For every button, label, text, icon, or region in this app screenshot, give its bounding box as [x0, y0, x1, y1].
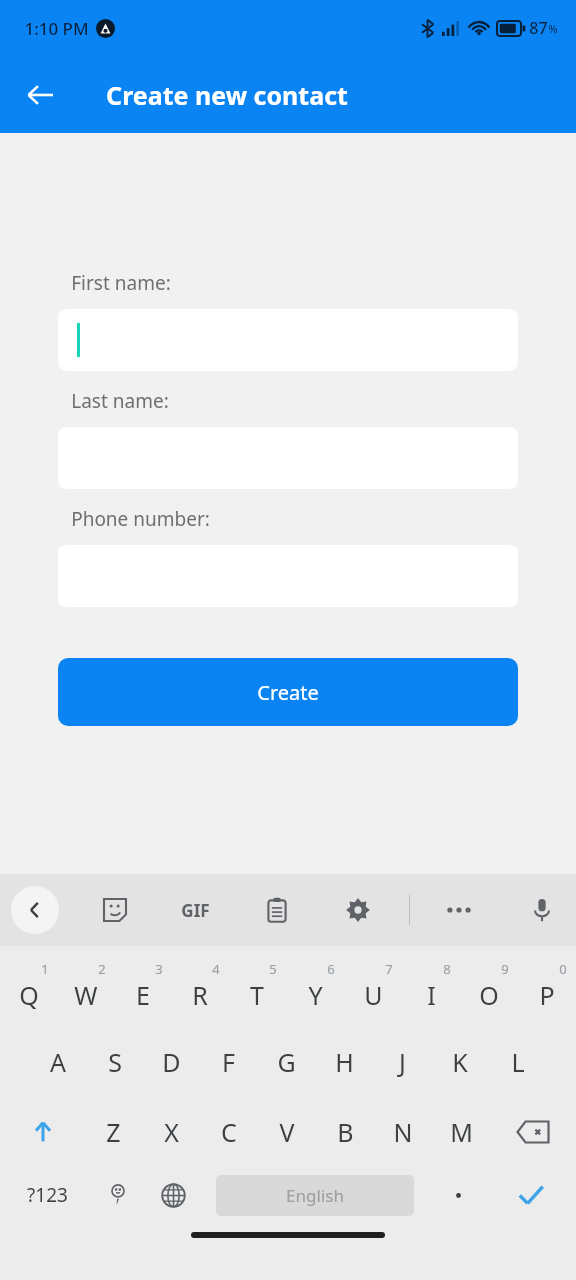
button[interactable]: Emoji: [94, 1171, 142, 1219]
staticText: V: [279, 1115, 295, 1149]
button[interactable]: D: [143, 1033, 200, 1091]
staticText: T: [250, 978, 264, 1012]
staticText: 7: [385, 960, 393, 978]
button[interactable]: Create: [58, 658, 518, 726]
staticText: 1: [41, 960, 49, 978]
staticText: S: [108, 1045, 122, 1079]
button[interactable]: M: [432, 1103, 490, 1161]
staticText: J: [399, 1045, 406, 1079]
staticText: Y: [308, 978, 323, 1012]
staticText: O: [479, 978, 499, 1012]
button[interactable]: English: [216, 1175, 414, 1216]
button[interactable]: K: [431, 1033, 489, 1091]
staticText: 9: [501, 960, 509, 978]
button[interactable]: T: [228, 959, 286, 1021]
staticText: X: [164, 1115, 179, 1149]
staticText: 87: [529, 17, 548, 39]
button[interactable]: W: [57, 959, 114, 1021]
button[interactable]: I: [402, 959, 460, 1021]
button[interactable]: [58, 309, 518, 371]
button[interactable]: Y: [286, 959, 344, 1021]
button[interactable]: Stickers: [92, 887, 138, 933]
staticText: English: [286, 1184, 344, 1207]
button[interactable]: A: [29, 1033, 86, 1091]
staticText: 1:10 PM: [24, 17, 89, 40]
button[interactable]: Change language: [149, 1171, 197, 1219]
button[interactable]: L: [489, 1033, 547, 1091]
staticText: Z: [106, 1115, 121, 1149]
staticText: F: [222, 1045, 235, 1079]
button[interactable]: ?123: [16, 1171, 78, 1219]
button[interactable]: V: [258, 1103, 316, 1161]
button[interactable]: Clipboard: [254, 887, 300, 933]
staticText: C: [221, 1115, 237, 1149]
staticText: 5: [269, 960, 277, 978]
button[interactable]: X: [142, 1103, 200, 1161]
button[interactable]: H: [315, 1033, 373, 1091]
staticText: U: [364, 978, 383, 1012]
staticText: ?123: [27, 1182, 68, 1208]
button[interactable]: S: [86, 1033, 143, 1091]
staticText: K: [452, 1045, 468, 1079]
staticText: G: [277, 1045, 296, 1079]
staticText: Last name:: [71, 388, 169, 414]
staticText: First name:: [71, 270, 171, 296]
staticText: B: [337, 1115, 354, 1149]
button[interactable]: P: [518, 959, 576, 1021]
staticText: Create new contact: [106, 78, 348, 112]
button[interactable]: Z: [85, 1103, 142, 1161]
staticText: 0: [559, 960, 567, 978]
button[interactable]: Period: [434, 1171, 482, 1219]
staticText: L: [511, 1045, 525, 1079]
button[interactable]: More options: [436, 887, 482, 933]
button[interactable]: E: [114, 959, 171, 1021]
staticText: Phone number:: [71, 506, 210, 532]
staticText: Q: [19, 978, 39, 1012]
staticText: E: [136, 978, 150, 1012]
staticText: 4: [212, 960, 220, 978]
button[interactable]: B: [316, 1103, 374, 1161]
button[interactable]: O: [460, 959, 518, 1021]
button[interactable]: J: [373, 1033, 431, 1091]
staticText: P: [539, 978, 555, 1012]
button[interactable]: U: [344, 959, 402, 1021]
staticText: N: [393, 1115, 413, 1149]
button[interactable]: Hide toolbar: [11, 886, 59, 934]
staticText: %: [548, 21, 558, 36]
button[interactable]: F: [200, 1033, 257, 1091]
button[interactable]: C: [200, 1103, 258, 1161]
button[interactable]: Shift: [0, 1103, 85, 1161]
staticText: 6: [327, 960, 335, 978]
staticText: H: [335, 1045, 354, 1079]
button[interactable]: Settings: [335, 887, 381, 933]
button[interactable]: Backspace: [490, 1103, 576, 1161]
button[interactable]: GIF: [172, 887, 218, 933]
button[interactable]: Voice input: [519, 887, 565, 933]
staticText: M: [450, 1115, 473, 1149]
staticText: D: [162, 1045, 181, 1079]
staticText: R: [192, 978, 208, 1012]
button[interactable]: G: [257, 1033, 315, 1091]
staticText: 2: [98, 960, 106, 978]
staticText: Create: [257, 679, 319, 706]
button[interactable]: Done: [504, 1171, 558, 1219]
staticText: GIF: [181, 899, 210, 922]
staticText: I: [427, 978, 436, 1012]
staticText: 8: [443, 960, 451, 978]
staticText: 3: [155, 960, 163, 978]
staticText: W: [74, 978, 98, 1012]
button[interactable]: N: [374, 1103, 432, 1161]
button[interactable]: R: [171, 959, 228, 1021]
staticText: A: [50, 1045, 66, 1079]
button[interactable]: Q: [0, 959, 57, 1021]
button[interactable]: Back: [12, 67, 68, 123]
